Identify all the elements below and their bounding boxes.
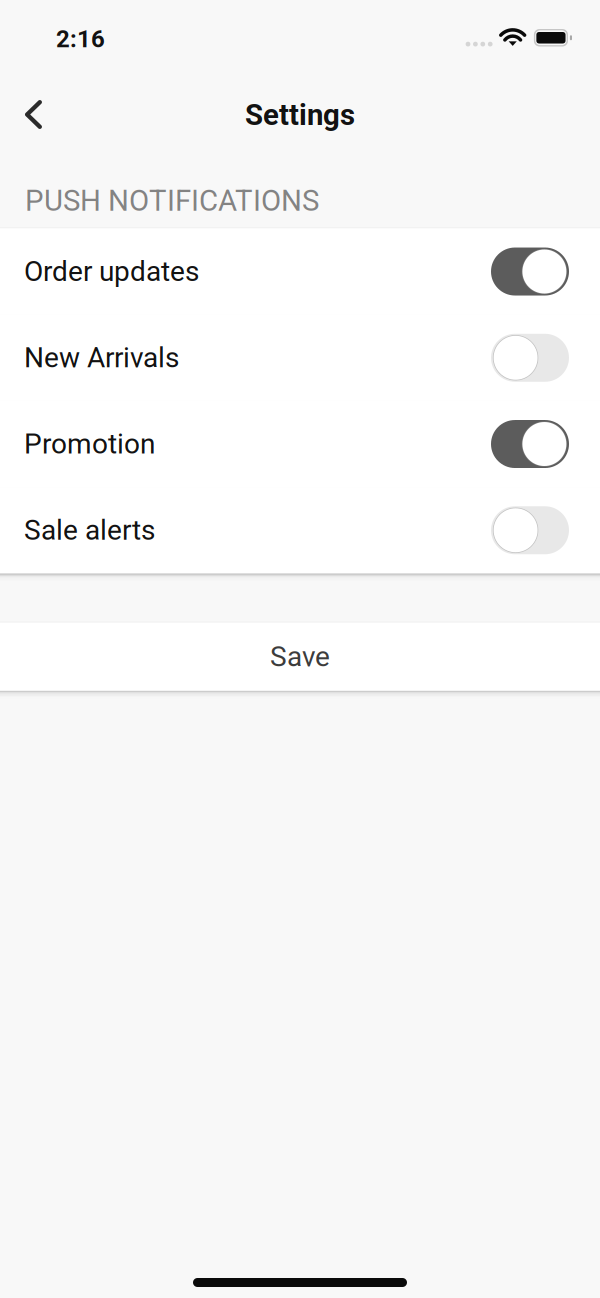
button[interactable]: On xyxy=(0,401,600,487)
staticText: New Arrivals xyxy=(24,341,179,374)
button[interactable]: On xyxy=(0,228,600,315)
staticText: Order updates xyxy=(24,255,199,288)
button[interactable]: Off xyxy=(0,487,600,573)
staticText: Settings xyxy=(245,98,355,132)
staticText: Save xyxy=(270,640,330,673)
staticText: Sale alerts xyxy=(24,514,155,547)
staticText: 2:16 xyxy=(56,25,105,53)
button[interactable]: Back xyxy=(0,76,66,148)
button[interactable]: Save xyxy=(0,623,600,691)
staticText: Promotion xyxy=(24,428,155,460)
staticText: PUSH NOTIFICATIONS xyxy=(25,184,319,218)
button[interactable]: Off xyxy=(0,315,600,401)
